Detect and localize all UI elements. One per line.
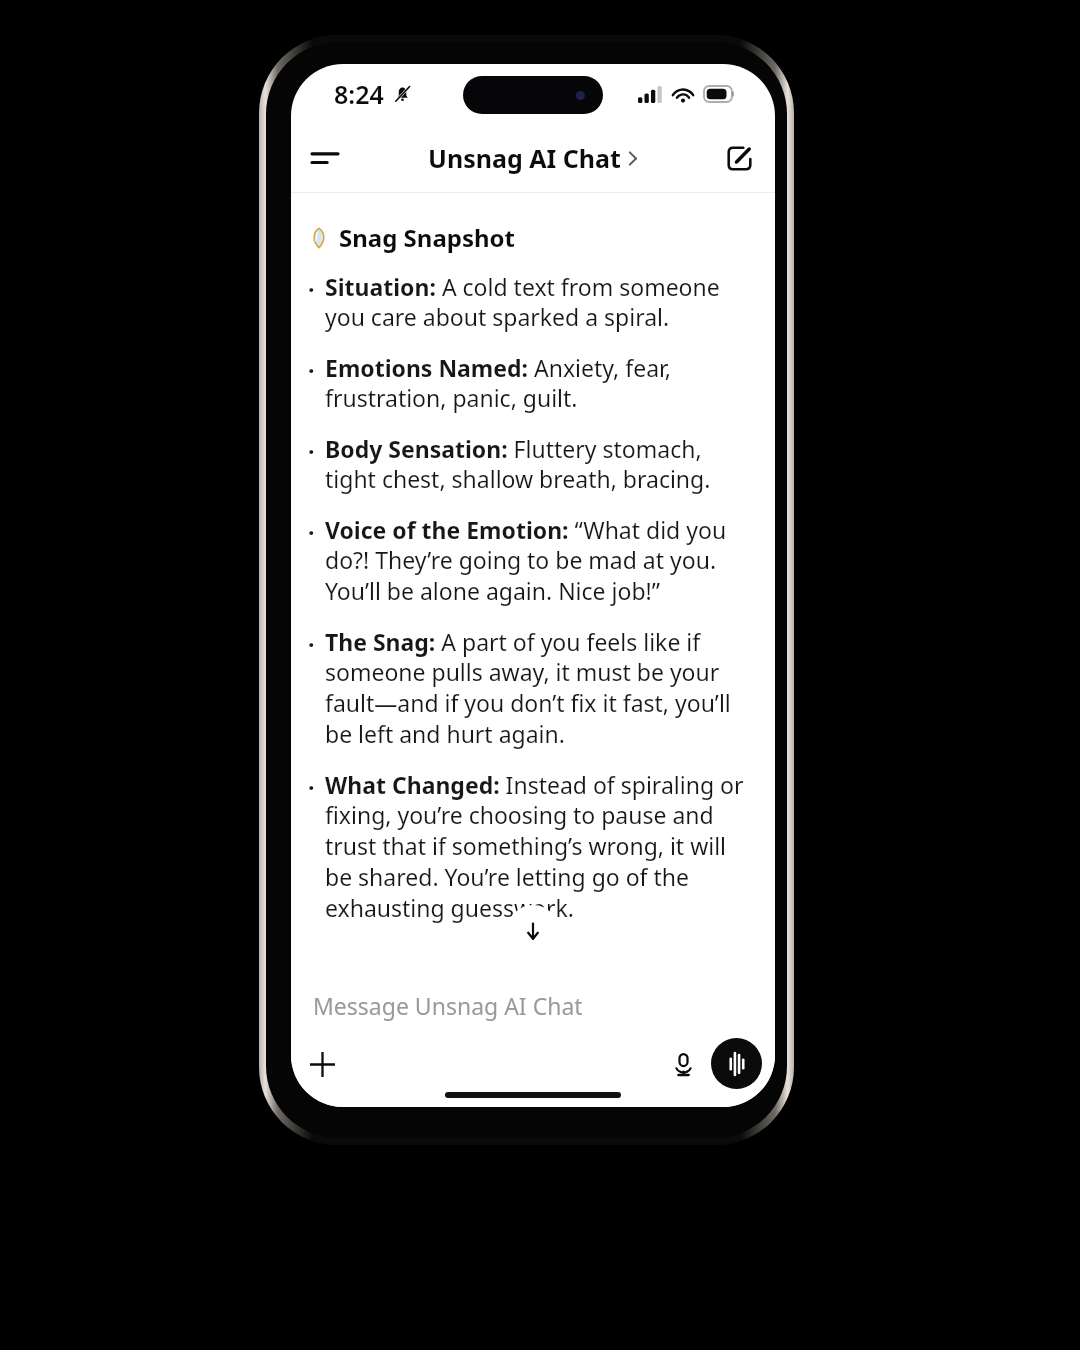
button[interactable]: Voice mode [711, 1038, 762, 1089]
staticText: 8:24 [334, 77, 384, 111]
staticText: Voice of the Emotion: “What did you do?!… [325, 514, 753, 607]
staticText: What Changed: Instead of spiraling or fi… [325, 769, 753, 924]
staticText: You did something important. You stayed … [308, 994, 753, 1056]
button[interactable]: New chat [713, 132, 765, 184]
staticText: · [308, 354, 315, 385]
staticText: Emotions Named: Anxiety, fear, frustrati… [325, 352, 753, 414]
staticText: Message Unsnag AI Chat [313, 990, 583, 1021]
staticText: Snag Snapshot [339, 221, 516, 254]
staticText: · [308, 771, 315, 802]
staticText: · [308, 516, 315, 547]
staticText: · [308, 273, 315, 304]
staticText: Body Sensation: Fluttery stomach, tight … [325, 433, 753, 495]
staticText: Unsnag AI Chat [428, 141, 621, 175]
staticText: The Snag: A part of you feels like if so… [325, 626, 753, 750]
staticText: Whenever you need a pause, I’m here. You… [308, 1083, 753, 1107]
staticText: Situation: A cold text from someone you … [325, 271, 753, 333]
button[interactable]: Dictate [659, 1040, 707, 1088]
staticText: · [308, 435, 315, 466]
button[interactable]: Open menu [299, 132, 351, 184]
button[interactable]: Scroll to bottom [507, 905, 559, 957]
button[interactable]: Add attachment [297, 1039, 347, 1089]
staticText: · [308, 628, 315, 659]
button[interactable]: Unsnag AI Chat [428, 141, 638, 175]
